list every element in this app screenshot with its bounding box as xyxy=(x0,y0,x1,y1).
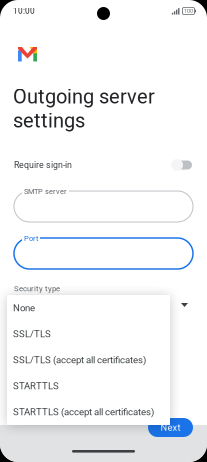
button[interactable]: Next xyxy=(148,418,193,437)
staticText: Outgoing server xyxy=(13,85,155,108)
staticText: SSL/TLS (accept all certificates) xyxy=(13,354,146,366)
staticText: Security type xyxy=(14,284,60,293)
button[interactable]: SSL/TLS (accept all certificates) xyxy=(7,347,170,373)
button[interactable]: STARTTLS (accept all certificates) xyxy=(7,399,170,425)
staticText: settings xyxy=(13,109,85,132)
staticText: None xyxy=(13,302,35,314)
staticText: 10:00 xyxy=(13,6,35,16)
button[interactable]: Require sign-in xyxy=(14,157,190,173)
button[interactable]: None xyxy=(7,295,170,321)
staticText: 100 xyxy=(184,8,193,14)
staticText: SMTP server xyxy=(24,187,67,196)
staticText: Require sign-in xyxy=(14,160,72,170)
staticText: Next xyxy=(160,422,180,433)
staticText: STARTTLS (accept all certificates) xyxy=(13,406,154,418)
button[interactable]: STARTTLS xyxy=(7,373,170,399)
staticText: SSL/TLS xyxy=(13,328,51,340)
staticText: Port xyxy=(24,234,38,243)
staticText: STARTTLS xyxy=(13,380,59,392)
button[interactable]: SSL/TLS xyxy=(7,321,170,347)
